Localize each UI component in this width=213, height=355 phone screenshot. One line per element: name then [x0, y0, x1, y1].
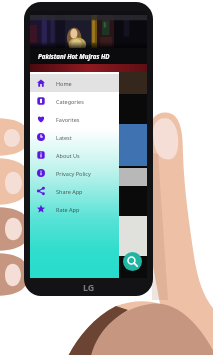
button[interactable]: About Us — [30, 146, 119, 164]
staticText: Favorites — [56, 116, 80, 123]
button[interactable]: Categories — [30, 92, 119, 110]
staticText: Rate App — [56, 206, 80, 213]
staticText: Home — [56, 80, 72, 87]
staticText: About Us — [56, 152, 80, 159]
staticText: Categories — [56, 98, 84, 105]
staticText: LG — [83, 281, 95, 293]
button[interactable]: Privacy Policy — [30, 164, 119, 182]
staticText: VIEW GALLERY — [70, 174, 107, 181]
staticText: Privacy Policy — [56, 170, 91, 177]
button[interactable]: Latest — [30, 128, 119, 146]
button[interactable]: Home — [30, 74, 119, 92]
button[interactable]: Favorites — [30, 110, 119, 128]
button[interactable]: Share App — [30, 182, 119, 200]
staticText: Latest — [56, 134, 72, 141]
button[interactable]: Rate App — [30, 200, 119, 218]
button[interactable]: Search — [123, 252, 142, 271]
staticText: Share App — [56, 188, 83, 195]
staticText: Pakistani Hot Mujras HD — [38, 52, 110, 60]
